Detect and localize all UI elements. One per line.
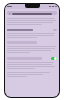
button[interactable] (7, 28, 57, 31)
button[interactable]: Toggle on (51, 57, 57, 60)
button[interactable]: Back (8, 12, 11, 15)
button[interactable]: Back (7, 11, 57, 15)
button[interactable]: Toggle on (7, 56, 57, 60)
